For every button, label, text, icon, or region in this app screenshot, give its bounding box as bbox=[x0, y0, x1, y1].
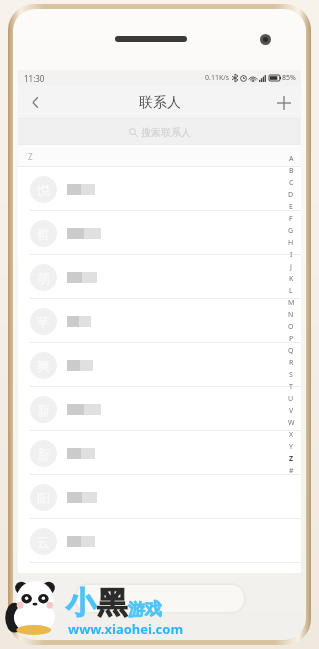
staticText: 云 bbox=[37, 534, 50, 550]
staticText: 11:30 bbox=[24, 73, 45, 84]
staticText: P bbox=[289, 334, 294, 344]
staticText: 爽 bbox=[37, 358, 50, 374]
staticText: O bbox=[288, 322, 294, 332]
button[interactable]: 新 bbox=[18, 431, 301, 475]
staticText: L bbox=[289, 286, 293, 296]
staticText: B bbox=[289, 166, 294, 176]
button[interactable]: 芊 bbox=[18, 299, 301, 343]
staticText: www.xiaohei.com bbox=[68, 620, 184, 638]
staticText: I bbox=[290, 250, 293, 260]
staticText: U bbox=[288, 394, 294, 404]
staticText: G bbox=[288, 226, 294, 236]
staticText: Z bbox=[289, 454, 294, 464]
staticText: V bbox=[289, 406, 294, 416]
button[interactable]: 新 bbox=[18, 387, 301, 431]
staticText: S bbox=[289, 370, 293, 380]
staticText: N bbox=[288, 310, 294, 320]
staticText: A bbox=[289, 154, 294, 164]
staticText: K bbox=[289, 274, 294, 284]
staticText: Q bbox=[288, 346, 294, 356]
staticText: 悦 bbox=[37, 182, 50, 198]
staticText: 游戏 bbox=[128, 599, 162, 620]
staticText: 黑 bbox=[97, 584, 127, 622]
button[interactable]: Back bbox=[18, 86, 52, 119]
staticText: 搜索联系人 bbox=[141, 126, 191, 139]
staticText: 85% bbox=[282, 73, 296, 83]
staticText: H bbox=[288, 238, 294, 248]
staticText: D bbox=[288, 190, 294, 200]
staticText: # bbox=[289, 466, 294, 476]
staticText: Y bbox=[289, 442, 293, 452]
staticText: 阳 bbox=[37, 490, 50, 506]
staticText: 新 bbox=[37, 446, 50, 462]
staticText: 哲 bbox=[37, 226, 50, 242]
button[interactable]: 阳 bbox=[18, 475, 301, 519]
staticText: 小 bbox=[66, 584, 96, 622]
staticText: 联系人 bbox=[139, 94, 181, 112]
staticText: F bbox=[289, 214, 293, 224]
staticText: W bbox=[288, 418, 295, 428]
staticText: M bbox=[288, 298, 295, 308]
button[interactable]: 云 bbox=[18, 519, 301, 563]
button[interactable]: 悦 bbox=[18, 167, 301, 211]
staticText: 芊 bbox=[37, 314, 50, 330]
staticText: 新 bbox=[37, 402, 50, 418]
staticText: X bbox=[289, 430, 294, 440]
button[interactable]: 搜索联系人 bbox=[18, 119, 301, 145]
staticText: E bbox=[289, 202, 293, 212]
button[interactable]: 哲 bbox=[18, 211, 301, 255]
staticText: C bbox=[289, 178, 294, 188]
staticText: 萌 bbox=[37, 270, 50, 286]
staticText: J bbox=[290, 262, 292, 272]
staticText: R bbox=[289, 358, 294, 368]
button[interactable]: 萌 bbox=[18, 255, 301, 299]
staticText: Z bbox=[28, 151, 33, 162]
button[interactable]: Alphabet index bbox=[285, 153, 297, 477]
staticText: T bbox=[289, 382, 293, 392]
button[interactable]: 爽 bbox=[18, 343, 301, 387]
button[interactable]: Add contact bbox=[267, 86, 301, 119]
staticText: 0.11K/s bbox=[205, 73, 230, 83]
